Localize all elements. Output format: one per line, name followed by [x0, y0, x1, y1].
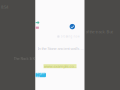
staticText: breaking now [60, 35, 79, 38]
button[interactable]: Replies [35, 73, 46, 77]
staticText: In the Stone ancient walls still stand [37, 46, 84, 51]
staticText: Replies [36, 71, 45, 79]
staticText: The Rock It Ki [13, 56, 35, 61]
staticText: of the track. But [85, 29, 112, 34]
button[interactable]: Open source link [70, 24, 75, 29]
staticText: www.example.com/read-more [43, 63, 76, 69]
button[interactable]: Saved [35, 26, 39, 29]
button[interactable]: www.example.com/read-more [43, 64, 76, 68]
staticText: 8:54 [1, 4, 8, 10]
button[interactable]: Verified account [35, 21, 39, 24]
